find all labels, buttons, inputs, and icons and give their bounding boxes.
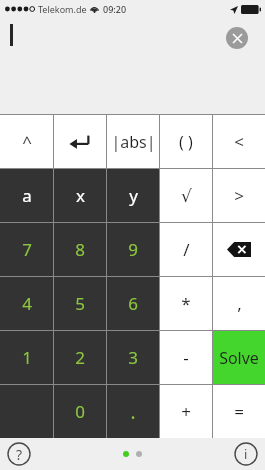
button[interactable]: Clear input bbox=[226, 27, 248, 49]
button[interactable]: ^ bbox=[0, 115, 53, 168]
staticText: x bbox=[76, 184, 85, 207]
button[interactable]: * bbox=[160, 277, 212, 330]
button[interactable]: Enter bbox=[54, 115, 106, 168]
staticText: |abs| bbox=[111, 131, 156, 153]
staticText: 3 bbox=[128, 346, 138, 369]
staticText: 5 bbox=[75, 292, 85, 315]
staticText: . bbox=[130, 399, 136, 425]
button[interactable]: - bbox=[160, 331, 212, 384]
button[interactable]: a bbox=[0, 169, 53, 222]
button[interactable]: Info bbox=[233, 441, 259, 467]
button[interactable]: + bbox=[160, 385, 212, 438]
button[interactable]: 9 bbox=[107, 223, 159, 276]
button[interactable]: Solve bbox=[213, 331, 265, 384]
staticText: 7 bbox=[22, 238, 32, 261]
staticText: - bbox=[183, 346, 189, 369]
staticText: 8 bbox=[75, 238, 85, 261]
staticText: 4 bbox=[22, 292, 32, 315]
button[interactable]: 2 bbox=[54, 331, 106, 384]
staticText: i bbox=[244, 445, 248, 463]
staticText: ^ bbox=[22, 130, 32, 153]
button[interactable]: < bbox=[213, 115, 265, 168]
staticText: / bbox=[183, 238, 190, 261]
button[interactable]: Help bbox=[6, 441, 32, 467]
button[interactable]: 5 bbox=[54, 277, 106, 330]
staticText: Telekom.de bbox=[38, 3, 87, 15]
button[interactable]: = bbox=[213, 385, 265, 438]
button[interactable]: . bbox=[107, 385, 159, 438]
staticText: 1 bbox=[22, 346, 32, 369]
button[interactable]: Backspace bbox=[213, 223, 265, 276]
staticText: 0 bbox=[75, 400, 85, 423]
staticText: , bbox=[237, 292, 242, 315]
button[interactable]: 7 bbox=[0, 223, 53, 276]
button[interactable]: |abs| bbox=[107, 115, 159, 168]
staticText: √ bbox=[181, 186, 192, 206]
staticText: + bbox=[181, 400, 191, 423]
staticText: < bbox=[234, 130, 244, 153]
staticText: ( ) bbox=[179, 131, 193, 153]
button[interactable]: / bbox=[160, 223, 212, 276]
staticText: 2 bbox=[75, 346, 85, 369]
button[interactable]: y bbox=[107, 169, 159, 222]
button[interactable]: > bbox=[213, 169, 265, 222]
button[interactable]: √ bbox=[160, 169, 212, 222]
staticText: 09:20 bbox=[103, 3, 127, 15]
button[interactable]: ( ) bbox=[160, 115, 212, 168]
button[interactable]: 3 bbox=[107, 331, 159, 384]
button[interactable]: 6 bbox=[107, 277, 159, 330]
staticText: > bbox=[234, 184, 244, 207]
button[interactable]: 0 bbox=[54, 385, 106, 438]
button[interactable]: , bbox=[213, 277, 265, 330]
button[interactable]: 1 bbox=[0, 331, 53, 384]
staticText: * bbox=[181, 292, 191, 315]
staticText: 9 bbox=[128, 238, 138, 261]
staticText: y bbox=[129, 184, 138, 207]
staticText: = bbox=[234, 400, 244, 423]
button[interactable]: x bbox=[54, 169, 106, 222]
staticText: 6 bbox=[128, 292, 138, 315]
staticText: a bbox=[22, 184, 32, 207]
button[interactable]: 8 bbox=[54, 223, 106, 276]
staticText: ? bbox=[16, 445, 23, 464]
button[interactable]: 4 bbox=[0, 277, 53, 330]
staticText: Solve bbox=[219, 347, 259, 369]
